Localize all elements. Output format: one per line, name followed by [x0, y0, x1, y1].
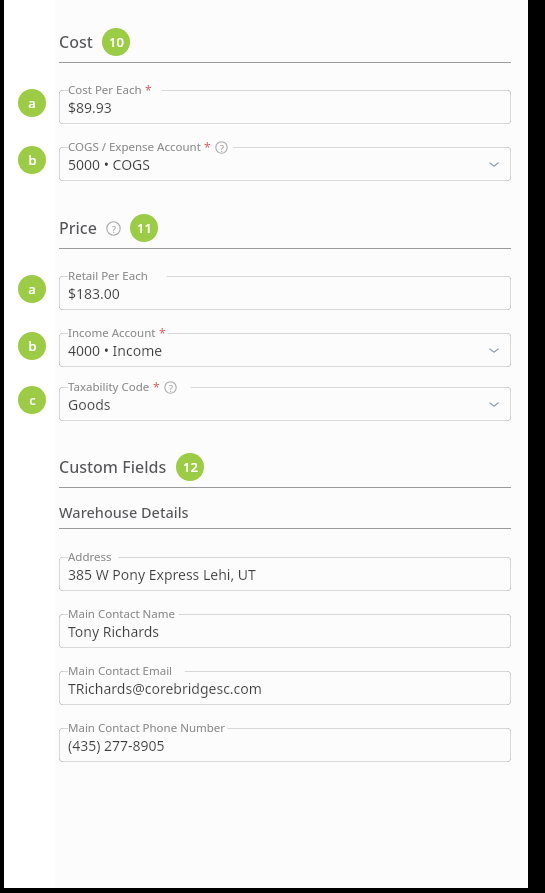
staticText: 11	[137, 219, 152, 237]
button[interactable]: Step 11	[130, 214, 158, 242]
staticText: 5000 • COGS	[68, 155, 150, 174]
staticText: a	[28, 280, 36, 298]
staticText: 12	[183, 458, 198, 476]
button[interactable]: Step c	[18, 386, 46, 414]
staticText: ?	[220, 142, 224, 154]
button[interactable]: Help	[164, 381, 177, 394]
staticText: 4000 • Income	[68, 341, 163, 360]
button[interactable]: $183.00	[59, 276, 511, 310]
button[interactable]: Goods	[59, 387, 511, 421]
staticText: Income Account	[68, 325, 156, 341]
button[interactable]: Step b	[18, 146, 46, 174]
button[interactable]: Help	[106, 221, 121, 236]
staticText: Custom Fields	[59, 456, 167, 478]
staticText: *	[150, 379, 160, 395]
staticText: Taxability Code	[68, 379, 150, 395]
staticText: Price	[59, 217, 97, 239]
staticText: TRichards@corebridgesc.com	[68, 679, 262, 698]
staticText: a	[28, 94, 36, 112]
button[interactable]: Step b	[18, 332, 46, 360]
staticText: Main Contact Email	[68, 663, 173, 679]
button[interactable]: TRichards@corebridgesc.com	[59, 671, 511, 705]
staticText: $183.00	[68, 284, 120, 303]
button[interactable]: Step 10	[102, 28, 130, 56]
staticText: Cost	[59, 31, 93, 53]
button[interactable]: Tony Richards	[59, 614, 511, 648]
button[interactable]: (435) 277-8905	[59, 728, 511, 762]
button[interactable]: 5000 • COGS	[59, 147, 511, 181]
button[interactable]: Step a	[18, 275, 46, 303]
staticText: Retail Per Each	[68, 268, 148, 284]
staticText: *	[201, 139, 211, 155]
staticText: Address	[68, 549, 112, 565]
staticText: *	[142, 82, 152, 98]
button[interactable]: 4000 • Income	[59, 333, 511, 367]
staticText: b	[28, 151, 37, 169]
staticText: $89.93	[68, 98, 112, 117]
staticText: 10	[109, 33, 124, 51]
staticText: (435) 277-8905	[68, 736, 165, 755]
staticText: 385 W Pony Express Lehi, UT	[68, 565, 256, 584]
staticText: COGS / Expense Account	[68, 139, 201, 155]
button[interactable]: 385 W Pony Express Lehi, UT	[59, 557, 511, 591]
staticText: Goods	[68, 395, 111, 414]
staticText: Main Contact Phone Number	[68, 720, 226, 736]
staticText: *	[156, 325, 166, 341]
staticText: Warehouse Details	[59, 502, 189, 522]
staticText: ?	[112, 223, 116, 235]
staticText: Main Contact Name	[68, 606, 175, 622]
staticText: Tony Richards	[68, 622, 160, 641]
staticText: Cost Per Each	[68, 82, 142, 98]
staticText: ?	[169, 382, 173, 394]
button[interactable]: Step a	[18, 89, 46, 117]
staticText: c	[29, 391, 36, 409]
button[interactable]: Help	[215, 141, 228, 154]
staticText: b	[28, 337, 37, 355]
button[interactable]: $89.93	[59, 90, 511, 124]
button[interactable]: Step 12	[176, 453, 204, 481]
